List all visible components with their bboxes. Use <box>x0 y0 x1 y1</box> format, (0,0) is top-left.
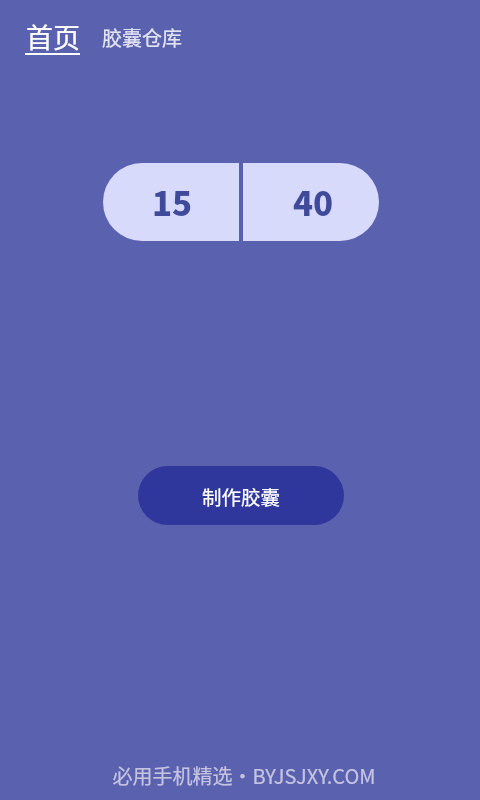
button[interactable]: 胶囊仓库 <box>102 0 182 52</box>
button[interactable]: 首页 <box>22 0 83 58</box>
staticText: 必用手机精选·BYJSJXY.COM <box>112 761 376 790</box>
button[interactable]: 40 <box>241 163 379 241</box>
staticText: 胶囊仓库 <box>102 23 182 52</box>
staticText: 40 <box>293 178 334 226</box>
button[interactable]: 制作胶囊 <box>138 466 344 525</box>
staticText: 15 <box>152 178 193 226</box>
staticText: 制作胶囊 <box>202 482 281 510</box>
staticText: 首页 <box>26 17 80 56</box>
button[interactable]: 15 <box>103 163 241 241</box>
